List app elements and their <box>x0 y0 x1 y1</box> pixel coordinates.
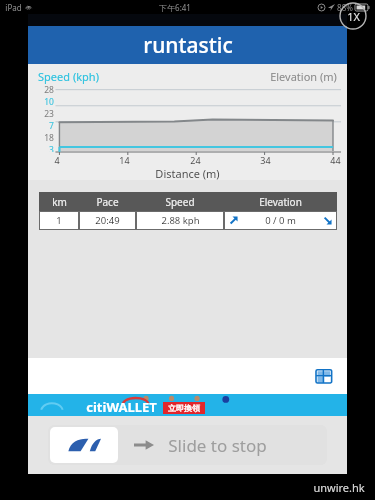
button[interactable]: Split view <box>311 363 337 389</box>
button[interactable]: Slide to stop <box>48 425 327 465</box>
button[interactable]: 1 <box>39 211 337 230</box>
staticText: iPad <box>5 2 22 13</box>
staticText: 1 <box>56 214 62 227</box>
staticText: 1X <box>347 9 360 24</box>
staticText: 0 / 0 m <box>265 214 296 227</box>
staticText: 3 <box>49 144 54 152</box>
button[interactable]: Advertisement <box>28 394 347 416</box>
staticText: 14 <box>119 154 130 166</box>
staticText: 44 <box>330 154 341 166</box>
staticText: 下午6:41 <box>159 2 191 13</box>
staticText: 20:49 <box>95 214 120 227</box>
staticText: Speed (kph) <box>38 69 99 84</box>
staticText: 24 <box>190 154 201 166</box>
staticText: Distance (m) <box>155 166 220 180</box>
staticText: citiWALLET <box>86 398 157 416</box>
staticText: Slide to stop <box>168 434 267 457</box>
button[interactable]: 1X zoom <box>339 2 367 30</box>
staticText: 28 <box>44 84 54 96</box>
staticText: 4 <box>54 154 60 166</box>
staticText: 88% <box>337 2 353 13</box>
staticText: unwire.hk <box>313 480 365 495</box>
staticText: runtastic <box>143 31 233 60</box>
staticText: Pace <box>96 195 119 209</box>
staticText: Speed <box>165 195 195 209</box>
staticText: 2.88 kph <box>161 214 200 227</box>
staticText: 34 <box>260 154 271 166</box>
staticText: km <box>52 195 67 209</box>
staticText: Elevation (m) <box>270 69 337 84</box>
staticText: 立即換領 <box>168 403 200 413</box>
staticText: Elevation <box>259 195 302 209</box>
staticText: 10 <box>44 96 54 108</box>
staticText: 23 <box>44 108 54 120</box>
staticText: 7 <box>49 120 54 132</box>
staticText: 18 <box>44 132 54 144</box>
